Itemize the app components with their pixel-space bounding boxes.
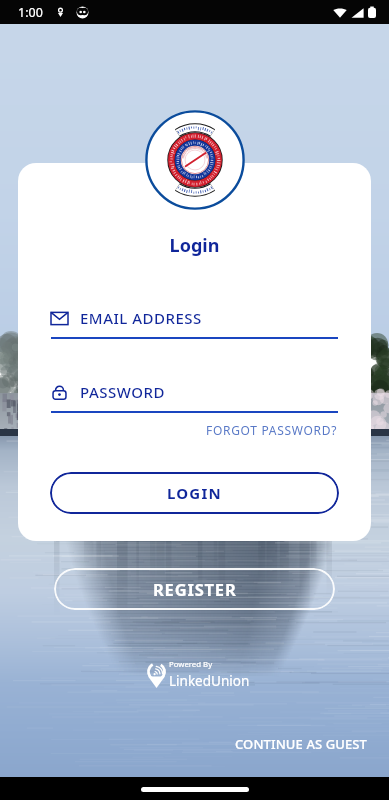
button[interactable]: CONTINUE AS GUEST <box>235 735 367 753</box>
staticText: CONTINUE AS GUEST <box>235 735 367 753</box>
button[interactable]: REGISTER <box>54 568 335 610</box>
staticText: PASSWORD <box>80 382 165 402</box>
staticText: EMAIL ADDRESS <box>80 308 202 328</box>
staticText: LOGIN <box>167 483 222 503</box>
staticText: Login <box>18 233 371 258</box>
staticText: LinkedUnion <box>169 672 250 690</box>
staticText: REGISTER <box>153 578 237 600</box>
staticText: Powered By <box>169 659 213 670</box>
button[interactable]: LOGIN <box>50 472 339 514</box>
button[interactable]: FORGOT PASSWORD? <box>206 422 338 438</box>
staticText: 1:00 <box>18 4 43 21</box>
button[interactable]: Powered By <box>147 659 250 690</box>
